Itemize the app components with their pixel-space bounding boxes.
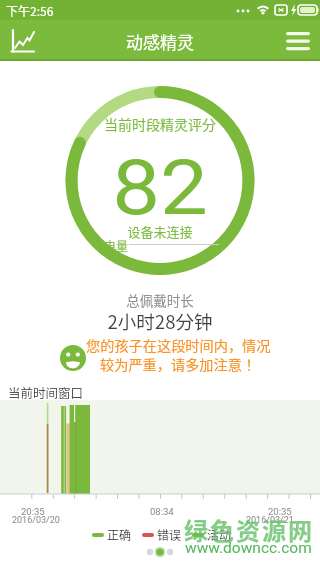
staticText: 下午2:56 — [6, 2, 54, 19]
staticText: 20:35 — [21, 506, 45, 517]
button[interactable]: 活动 — [192, 526, 232, 543]
button[interactable]: 正确 — [92, 526, 132, 543]
staticText: 82 — [0, 143, 320, 232]
staticText: 较为严重，请多加注意！ — [100, 354, 257, 375]
staticText: 您的孩子在这段时间内，情况 — [86, 335, 271, 356]
staticText: 设备未连接 — [0, 222, 320, 241]
button[interactable] — [276, 20, 320, 61]
staticText: 2016/03/20 — [12, 515, 60, 526]
staticText: 电量 — [104, 237, 129, 254]
staticText: 2小时28分钟 — [0, 308, 320, 335]
staticText: 正确 — [107, 526, 132, 543]
staticText: 活动 — [207, 526, 232, 543]
button[interactable]: 错误 — [142, 526, 182, 543]
staticText: 08:34 — [150, 506, 174, 517]
button[interactable]: 电量 — [104, 237, 129, 254]
staticText: www.downcc.com — [185, 539, 312, 557]
button[interactable]: 您的孩子在这段时间内，情况 — [58, 334, 274, 378]
staticText: 绿色资源网 — [184, 512, 314, 547]
staticText: 当前时段精灵评分 — [0, 114, 320, 134]
button[interactable] — [140, 546, 180, 558]
staticText: 错误 — [157, 526, 182, 543]
staticText: 20:35 — [268, 506, 292, 517]
staticText: 总佩戴时长 — [0, 290, 320, 310]
staticText: 2016/03/21 — [246, 515, 294, 526]
staticText: 当前时间窗口 — [8, 383, 84, 401]
staticText: 动感精灵 — [126, 29, 194, 54]
button[interactable] — [0, 20, 46, 61]
